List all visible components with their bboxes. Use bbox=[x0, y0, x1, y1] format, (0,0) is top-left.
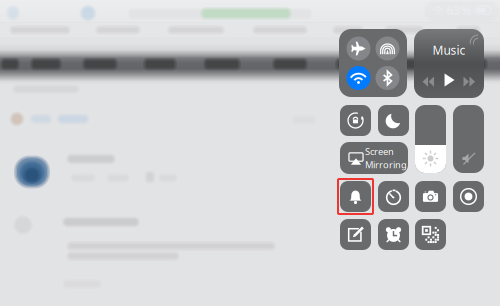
button[interactable]: Play bbox=[442, 73, 455, 86]
staticText: Music bbox=[432, 42, 465, 58]
button[interactable]: Notifications bbox=[340, 181, 371, 212]
button[interactable]: Notes bbox=[340, 219, 371, 250]
button[interactable]: Rotation Lock bbox=[340, 105, 371, 136]
button[interactable]: Camera bbox=[415, 181, 446, 212]
button[interactable]: Next Track bbox=[463, 76, 475, 84]
button[interactable]: Screen Recording bbox=[453, 181, 484, 212]
button[interactable]: Brightness bbox=[415, 105, 446, 173]
staticText: Screen bbox=[365, 145, 394, 157]
button[interactable]: Scan Code bbox=[415, 219, 446, 250]
button[interactable]: Screen Mirroring bbox=[340, 142, 408, 174]
button[interactable]: AirDrop bbox=[375, 36, 399, 60]
button[interactable]: Timer bbox=[378, 181, 409, 212]
button[interactable]: Volume bbox=[453, 105, 484, 173]
button[interactable]: Wi-Fi bbox=[346, 66, 370, 90]
button[interactable]: Bluetooth bbox=[375, 66, 399, 90]
button[interactable]: Previous Track bbox=[422, 76, 434, 84]
button[interactable]: Do Not Disturb bbox=[378, 105, 409, 136]
staticText: Mirroring bbox=[365, 158, 407, 171]
staticText: 63% bbox=[446, 2, 471, 18]
button[interactable]: Airplane Mode bbox=[346, 36, 370, 60]
button[interactable]: Alarm bbox=[378, 219, 409, 250]
